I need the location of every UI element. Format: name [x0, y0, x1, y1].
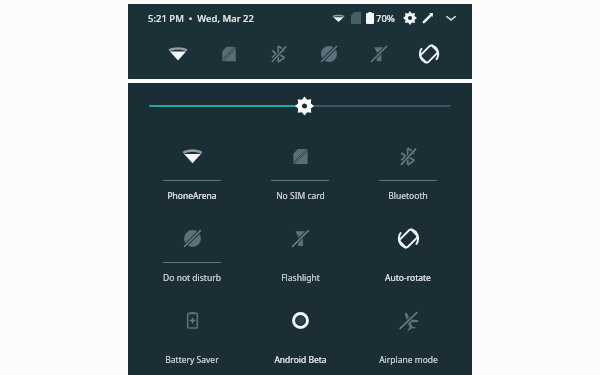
button[interactable]: Wi-Fi [152, 34, 203, 74]
button[interactable]: Brightness [128, 83, 472, 129]
button[interactable]: Bluetooth [354, 129, 462, 211]
button[interactable]: Settings [403, 11, 417, 25]
button[interactable]: Developer options [421, 12, 434, 25]
button[interactable]: PhoneArena [138, 129, 246, 211]
staticText: Android Beta [274, 354, 327, 366]
button[interactable]: Bluetooth [254, 34, 304, 74]
button[interactable]: Auto-rotate [404, 34, 454, 74]
button[interactable]: Do not disturb [138, 211, 246, 293]
staticText: Bluetooth [388, 190, 428, 202]
button[interactable]: Collapse [444, 11, 458, 25]
button[interactable]: Battery Saver [138, 293, 246, 375]
button[interactable]: Auto-rotate [354, 211, 462, 293]
staticText: Flashlight [281, 272, 320, 284]
staticText: 5:21 PM • Wed, Mar 22 [148, 12, 254, 25]
button[interactable]: Android Beta [246, 293, 354, 375]
staticText: 70% [376, 12, 395, 25]
button[interactable]: Flashlight [354, 34, 404, 74]
button[interactable]: No SIM card [246, 129, 354, 211]
button[interactable]: Do not disturb [304, 34, 354, 74]
staticText: Airplane mode [379, 354, 438, 366]
staticText: No SIM card [276, 190, 325, 202]
staticText: Auto-rotate [385, 272, 431, 284]
staticText: PhoneArena [167, 190, 217, 202]
button[interactable]: Airplane mode [354, 293, 462, 375]
staticText: Do not disturb [163, 272, 221, 284]
staticText: Battery Saver [165, 354, 219, 366]
button[interactable]: Flashlight [246, 211, 354, 293]
button[interactable]: No SIM card [203, 34, 254, 74]
